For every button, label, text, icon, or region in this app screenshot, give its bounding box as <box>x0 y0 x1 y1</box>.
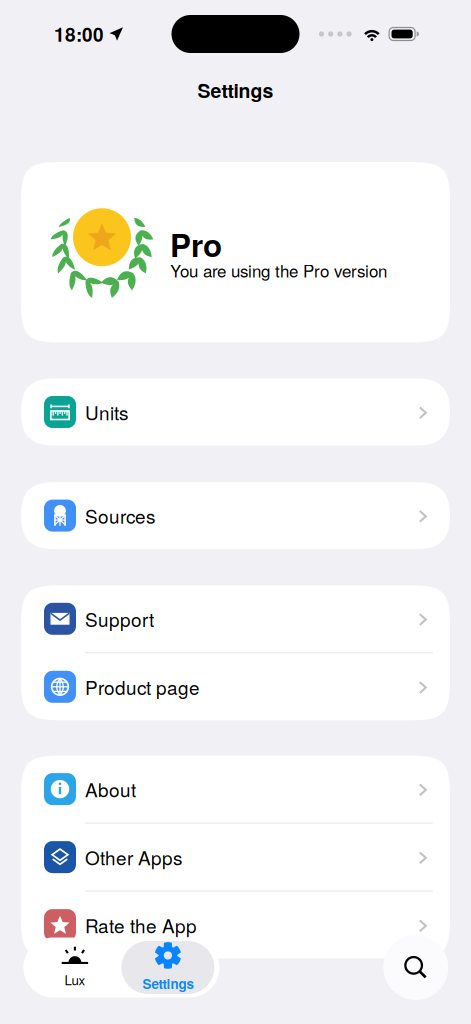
button[interactable]: Search <box>383 935 448 1000</box>
staticText: Rate the App <box>85 911 197 939</box>
staticText: Other Apps <box>85 843 182 871</box>
staticText: Units <box>85 398 128 425</box>
staticText: Support <box>85 605 154 632</box>
staticText: Lux <box>64 970 85 989</box>
button[interactable]: Rate the App <box>21 892 450 959</box>
staticText: Settings <box>197 76 273 104</box>
staticText: Settings <box>142 974 193 993</box>
staticText: Product page <box>85 673 200 700</box>
staticText: 18:00 <box>54 20 104 47</box>
button[interactable]: Settings <box>121 941 214 994</box>
staticText: Sources <box>85 502 155 529</box>
staticText: You are using the Pro version <box>170 258 387 282</box>
button[interactable]: Support <box>21 585 450 652</box>
button[interactable]: Product page <box>21 653 450 720</box>
button[interactable]: Sources <box>21 482 450 549</box>
button[interactable]: Other Apps <box>21 824 450 891</box>
button[interactable]: Lux <box>28 941 121 994</box>
button[interactable]: Units <box>21 378 450 445</box>
button[interactable]: About <box>21 756 450 823</box>
staticText: About <box>85 775 136 803</box>
staticText: Pro <box>170 222 222 267</box>
